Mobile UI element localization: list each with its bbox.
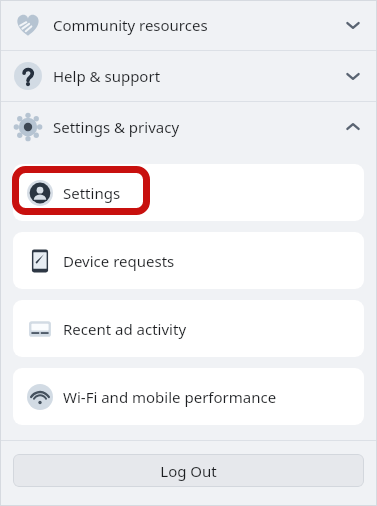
staticText: Device requests (63, 251, 175, 271)
staticText: Community resources (53, 15, 208, 35)
button[interactable]: Settings & privacy (0, 102, 377, 152)
staticText: Recent ad activity (63, 319, 187, 339)
button[interactable]: Settings (13, 164, 364, 221)
button[interactable]: Wi-Fi and mobile performance (13, 368, 364, 425)
staticText: Wi-Fi and mobile performance (63, 387, 277, 407)
button[interactable]: Help & support (0, 51, 377, 101)
staticText: Log Out (160, 461, 217, 481)
staticText: Help & support (53, 66, 161, 86)
button[interactable]: Recent ad activity (13, 300, 364, 357)
button[interactable]: Device requests (13, 232, 364, 289)
button[interactable]: Log Out (13, 454, 364, 487)
button[interactable]: Community resources (0, 0, 377, 50)
staticText: Settings (63, 183, 121, 203)
staticText: Settings & privacy (53, 117, 180, 137)
